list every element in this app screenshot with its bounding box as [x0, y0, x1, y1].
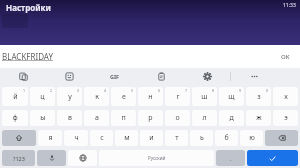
- staticText: о: [175, 113, 180, 123]
- button[interactable]: э: [273, 110, 298, 126]
- button[interactable]: д: [219, 110, 244, 126]
- button[interactable]: ?123: [2, 150, 35, 166]
- staticText: м: [124, 133, 130, 143]
- staticText: р: [148, 113, 153, 123]
- staticText: у: [68, 92, 72, 102]
- button[interactable]: GIF: [92, 68, 138, 85]
- button[interactable]: Clipboard: [138, 68, 184, 85]
- button[interactable]: ф: [2, 110, 28, 126]
- staticText: щ: [228, 92, 235, 102]
- button[interactable]: и: [140, 130, 163, 146]
- staticText: з: [257, 92, 261, 102]
- staticText: ь: [200, 133, 204, 143]
- staticText: г: [176, 92, 180, 102]
- button[interactable]: к: [84, 87, 109, 106]
- staticText: .: [230, 155, 232, 162]
- button[interactable]: Clipboard translate: [0, 68, 46, 85]
- button[interactable]: .: [216, 150, 245, 166]
- staticText: ф: [12, 113, 18, 123]
- button[interactable]: ч: [64, 130, 88, 146]
- staticText: н: [148, 92, 153, 102]
- staticText: ч: [74, 133, 79, 143]
- staticText: 1: [23, 88, 26, 93]
- button[interactable]: з: [246, 87, 271, 106]
- staticText: ш: [201, 92, 208, 102]
- button[interactable]: BLACKFRIDAY: [2, 51, 54, 62]
- staticText: 11:33: [283, 2, 296, 9]
- button[interactable]: Backspace: [265, 130, 298, 146]
- button[interactable]: х: [273, 87, 298, 106]
- staticText: ы: [40, 113, 46, 123]
- button[interactable]: Shift: [2, 130, 36, 146]
- staticText: 3: [77, 88, 80, 93]
- staticText: в: [68, 113, 72, 123]
- button[interactable]: л: [192, 110, 217, 126]
- staticText: GIF: [110, 73, 120, 80]
- button[interactable]: р: [138, 110, 163, 126]
- staticText: д: [229, 113, 234, 123]
- button[interactable]: ц: [30, 87, 55, 106]
- staticText: 5: [131, 88, 134, 93]
- staticText: и: [149, 133, 154, 143]
- staticText: 7: [185, 88, 188, 93]
- button[interactable]: ы: [30, 110, 55, 126]
- button[interactable]: Enter: [247, 150, 298, 166]
- button[interactable]: в: [57, 110, 82, 126]
- staticText: OK: [281, 53, 290, 61]
- button[interactable]: е: [111, 87, 136, 106]
- button[interactable]: а: [84, 110, 109, 126]
- button[interactable]: ь: [190, 130, 213, 146]
- staticText: я: [48, 133, 53, 143]
- staticText: 8: [212, 88, 215, 93]
- button[interactable]: п: [111, 110, 136, 126]
- button[interactable]: Settings: [184, 68, 230, 85]
- staticText: ?123: [13, 155, 25, 162]
- button[interactable]: Русский: [99, 150, 214, 166]
- staticText: BLACKFRIDAY: [2, 51, 54, 62]
- button[interactable]: я: [38, 130, 62, 146]
- staticText: ю: [249, 133, 255, 143]
- button[interactable]: б: [215, 130, 238, 146]
- button[interactable]: Change language: [68, 150, 97, 166]
- staticText: т: [175, 133, 179, 143]
- button[interactable]: щ: [219, 87, 244, 106]
- button[interactable]: ю: [240, 130, 263, 146]
- staticText: л: [202, 113, 207, 123]
- staticText: 2: [50, 88, 53, 93]
- staticText: п: [121, 113, 126, 123]
- staticText: Русский: [148, 155, 166, 161]
- button[interactable]: г: [165, 87, 190, 106]
- staticText: ж: [256, 113, 262, 123]
- button[interactable]: More options: [231, 68, 277, 85]
- staticText: б: [224, 133, 229, 143]
- button[interactable]: Stickers: [46, 68, 92, 85]
- staticText: х: [284, 92, 288, 102]
- staticText: 9: [239, 88, 242, 93]
- staticText: ц: [40, 92, 45, 102]
- button[interactable]: т: [165, 130, 188, 146]
- button[interactable]: н: [138, 87, 163, 106]
- staticText: й: [13, 92, 18, 102]
- staticText: 4: [104, 88, 107, 93]
- button[interactable]: ж: [246, 110, 271, 126]
- staticText: а: [95, 113, 99, 123]
- staticText: с: [100, 133, 104, 143]
- button[interactable]: ш: [192, 87, 217, 106]
- staticText: е: [122, 92, 126, 102]
- button[interactable]: й: [2, 87, 28, 106]
- staticText: э: [284, 113, 288, 123]
- button[interactable]: м: [115, 130, 138, 146]
- button[interactable]: о: [165, 110, 190, 126]
- staticText: 0: [266, 88, 269, 93]
- button[interactable]: у: [57, 87, 82, 106]
- button[interactable]: с: [90, 130, 113, 146]
- staticText: Настройки: [6, 2, 51, 13]
- staticText: к: [95, 92, 99, 102]
- button[interactable]: OK: [281, 45, 290, 68]
- button[interactable]: Voice input: [37, 150, 66, 166]
- staticText: 6: [158, 88, 161, 93]
